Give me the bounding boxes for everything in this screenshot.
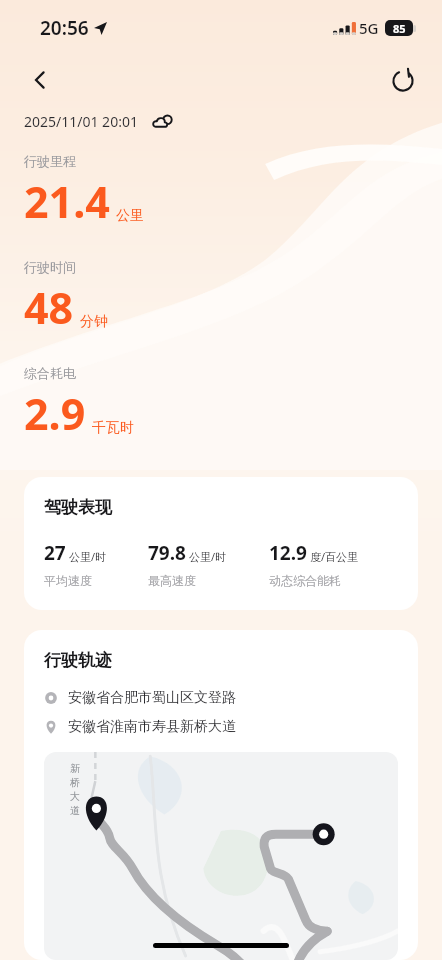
staticText: 行驶轨迹 (44, 650, 112, 671)
staticText: 2.9 (24, 384, 86, 443)
staticText: 新 (70, 762, 80, 775)
staticText: 驾驶表现 (44, 497, 112, 518)
staticText: 20:56 (40, 15, 89, 41)
staticText: 度/百公里 (310, 549, 359, 564)
staticText: 公里 (116, 207, 144, 225)
staticText: 5G (359, 18, 379, 38)
staticText: 85 (393, 21, 406, 36)
staticText: 行驶里程 (24, 153, 76, 169)
button[interactable]: Refresh (382, 59, 424, 101)
staticText: 安徽省淮南市寿县新桥大道 (68, 718, 236, 736)
staticText: 公里/时 (189, 549, 227, 564)
button[interactable]: 行驶轨迹 (24, 630, 418, 960)
button[interactable]: 安徽省淮南市寿县新桥大道 (24, 716, 418, 738)
staticText: 综合耗电 (24, 365, 76, 381)
button[interactable]: 安徽省合肥市蜀山区文登路 (24, 687, 418, 709)
button[interactable]: 驾驶表现 (24, 477, 418, 610)
staticText: 21.4 (24, 172, 110, 231)
button[interactable]: Back (20, 60, 60, 100)
staticText: 12.9 (269, 540, 307, 566)
staticText: 27 (44, 540, 66, 566)
staticText: 48 (24, 278, 74, 337)
staticText: 道 (70, 804, 80, 817)
staticText: 大 (70, 790, 80, 803)
staticText: 最高速度 (148, 573, 196, 588)
button[interactable]: Route map (44, 752, 398, 960)
staticText: 行驶时间 (24, 259, 76, 275)
staticText: 公里/时 (69, 549, 107, 564)
staticText: 千瓦时 (92, 419, 134, 437)
staticText: 分钟 (80, 313, 108, 331)
staticText: 桥 (70, 776, 80, 789)
staticText: 平均速度 (44, 573, 92, 588)
staticText: 2025/11/01 20:01 (24, 112, 138, 131)
staticText: 79.8 (148, 540, 186, 566)
staticText: 安徽省合肥市蜀山区文登路 (68, 689, 236, 707)
staticText: 动态综合能耗 (269, 573, 341, 588)
